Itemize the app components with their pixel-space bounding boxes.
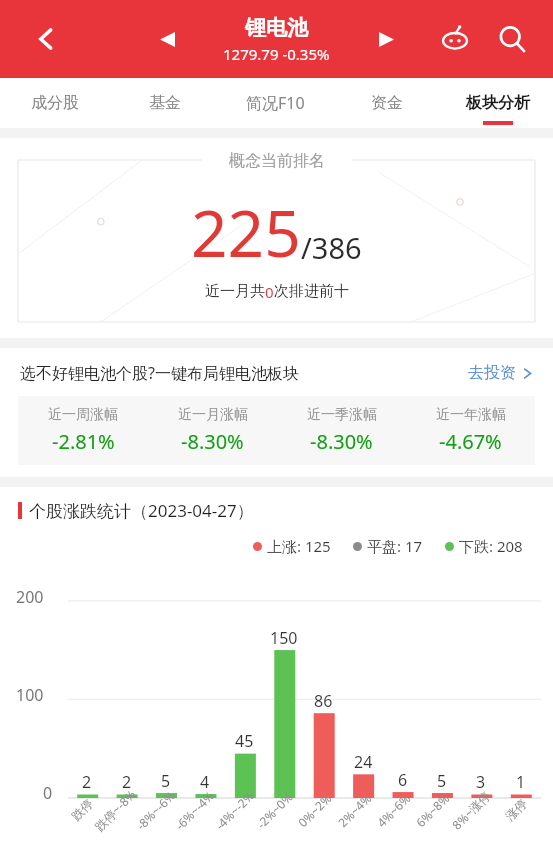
button[interactable]: 资金 (331, 78, 442, 128)
staticText: 概念当前排名 (229, 151, 325, 171)
staticText: 个股涨跌统计（2023-04-27） (29, 499, 254, 522)
staticText: 150 (270, 627, 298, 649)
staticText: 近一季涨幅 (307, 406, 377, 424)
staticText: 简况F10 (246, 92, 305, 114)
staticText: 锂电池 (245, 15, 308, 41)
button[interactable]: 板块分析 (442, 78, 553, 128)
staticText: 1279.79 -0.35% (223, 44, 330, 64)
staticText: 近一月共 (205, 282, 265, 301)
staticText: 次排进前十 (274, 282, 349, 301)
staticText: 100 (16, 684, 44, 706)
staticText: -8.30% (310, 428, 373, 455)
staticText: 资金 (371, 93, 403, 113)
staticText: 涨停 (502, 796, 530, 823)
staticText: 200 (16, 586, 44, 608)
button[interactable]: 成分股 (0, 78, 110, 128)
staticText: 选不好锂电池个股?一键布局锂电池板块 (20, 362, 468, 384)
staticText: 下跌: 208 (459, 536, 523, 556)
staticText: -2.81% (52, 428, 115, 455)
staticText: 去投资 (468, 363, 516, 383)
staticText: 8%~涨停 (448, 787, 494, 833)
staticText: 4%~6% (373, 790, 414, 830)
staticText: 板块分析 (466, 93, 530, 113)
staticText: 平盘: 17 (367, 536, 423, 556)
staticText: 近一年涨幅 (436, 406, 506, 424)
staticText: 2 (82, 771, 92, 793)
staticText: 3 (476, 771, 486, 793)
staticText: 1 (516, 771, 526, 793)
staticText: 225 (191, 189, 301, 276)
button[interactable]: Back (24, 17, 68, 61)
staticText: -8.30% (181, 428, 244, 455)
staticText: -8%~-6% (132, 787, 178, 833)
staticText: 0 (265, 282, 274, 302)
staticText: -2%~0% (253, 788, 296, 831)
staticText: 近一月涨幅 (178, 406, 248, 424)
button[interactable]: Next sector (369, 22, 403, 56)
staticText: 跌停~-8% (91, 786, 139, 834)
staticText: 0 (43, 782, 53, 804)
button[interactable]: AI assistant (433, 17, 477, 61)
staticText: -4.67% (439, 428, 502, 455)
staticText: 6 (398, 769, 408, 791)
staticText: 24 (354, 751, 373, 773)
staticText: /386 (301, 228, 362, 267)
button[interactable]: Search (489, 16, 535, 62)
staticText: 上涨: 125 (267, 536, 331, 556)
staticText: 45 (235, 730, 254, 752)
staticText: 近一周涨幅 (48, 406, 118, 424)
staticText: 跌停 (68, 796, 96, 823)
button[interactable]: Previous sector (150, 22, 184, 56)
button[interactable]: 基金 (110, 78, 220, 128)
staticText: 6%~8% (412, 790, 453, 830)
staticText: 成分股 (31, 93, 79, 113)
staticText: 4 (200, 771, 210, 793)
button[interactable]: 简况F10 (220, 78, 331, 128)
staticText: 86 (314, 690, 333, 712)
staticText: 0%~2% (294, 790, 335, 830)
staticText: -6%~-4% (171, 787, 217, 833)
staticText: 5 (437, 770, 447, 792)
button[interactable]: 选不好锂电池个股?一键布局锂电池板块 (0, 362, 553, 384)
staticText: 2 (122, 771, 132, 793)
staticText: 5 (161, 770, 171, 792)
staticText: 基金 (149, 93, 181, 113)
staticText: 2%~4% (334, 790, 375, 830)
staticText: -4%~-2% (211, 787, 257, 833)
